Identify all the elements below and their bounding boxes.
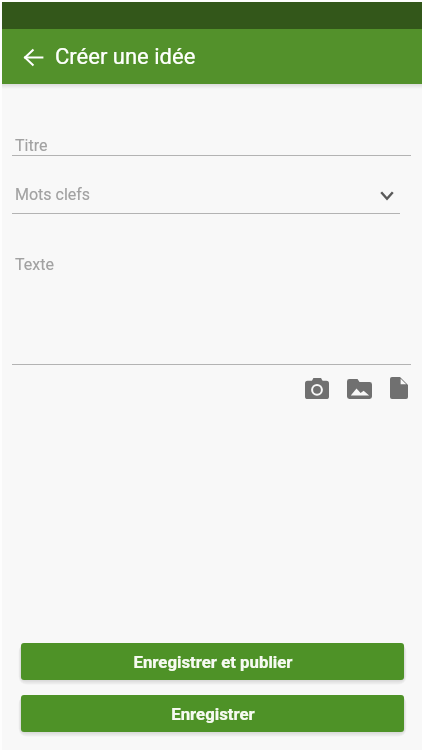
button[interactable]: Titre	[12, 128, 411, 156]
button[interactable]: Enregistrer	[21, 695, 404, 732]
staticText: Texte	[15, 255, 54, 274]
button[interactable]: Take photo	[300, 373, 333, 403]
staticText: Créer une idée	[55, 44, 196, 70]
button[interactable]: Choose image from gallery	[343, 374, 375, 404]
button[interactable]: Show keyword list	[371, 180, 403, 210]
button[interactable]: Mots clefs	[12, 177, 370, 214]
staticText: Titre	[15, 136, 48, 155]
staticText: Enregistrer et publier	[133, 652, 293, 672]
button[interactable]: Back	[9, 33, 57, 81]
staticText: Mots clefs	[15, 185, 91, 204]
button[interactable]: Enregistrer et publier	[21, 643, 404, 680]
button[interactable]: Attach file	[385, 373, 413, 403]
button[interactable]: Texte	[12, 247, 411, 364]
staticText: Enregistrer	[171, 704, 255, 724]
